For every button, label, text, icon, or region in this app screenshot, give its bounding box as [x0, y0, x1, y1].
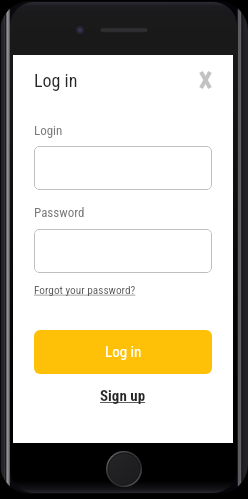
- button[interactable]: [34, 229, 212, 273]
- button[interactable]: Forgot your password?: [34, 284, 136, 297]
- button[interactable]: [34, 146, 212, 190]
- staticText: Password: [34, 205, 85, 220]
- button[interactable]: Log in: [34, 330, 212, 374]
- button[interactable]: Sign up: [100, 387, 146, 405]
- staticText: Log in: [34, 70, 78, 91]
- button[interactable]: Close: [193, 68, 217, 92]
- staticText: Login: [34, 123, 63, 138]
- staticText: Log in: [105, 343, 142, 361]
